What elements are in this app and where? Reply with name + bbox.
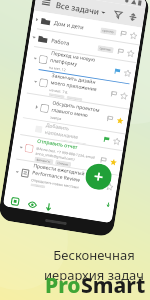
staticText: Переход на новую платформу	[50, 50, 115, 74]
button[interactable]: Отметить выполненной	[39, 78, 48, 88]
button[interactable]: Избранное	[112, 136, 121, 146]
staticText: Определить новых местами	[31, 177, 79, 190]
staticText: Дом и дети	[54, 19, 85, 31]
staticText: Отправить отчет	[37, 138, 78, 151]
button[interactable]: Избранное	[105, 182, 114, 191]
button[interactable]: Флажок	[105, 114, 114, 123]
button[interactable]: Избранное	[108, 157, 118, 166]
staticText: Бесконечная	[53, 246, 135, 264]
button[interactable]: Флажок	[119, 29, 128, 38]
staticText: завтра	[50, 114, 62, 121]
button[interactable]: Развернуть	[125, 9, 140, 24]
staticText: Обсудить проектом главного меню	[51, 100, 107, 122]
button[interactable]: Отметить выполненной	[17, 92, 129, 133]
staticText: на мет. 12	[49, 65, 66, 72]
button[interactable]: Избранное	[128, 31, 138, 40]
staticText: работа	[32, 184, 43, 187]
staticText: на мет. 3	[44, 137, 59, 140]
staticText: срочно	[57, 161, 69, 166]
staticText: срочно	[102, 28, 115, 34]
button[interactable]: Добавить задачу	[84, 162, 113, 191]
button[interactable]: Меню	[39, 0, 53, 9]
button[interactable]: Работа	[28, 28, 140, 62]
button[interactable]: Фильтр	[110, 7, 125, 22]
button[interactable]: Избранное	[115, 116, 124, 125]
button[interactable]: Добавить напоминание	[14, 117, 125, 150]
staticText: Работа	[51, 37, 71, 47]
button[interactable]: Отметить выполненной	[39, 55, 48, 64]
button[interactable]: Отметить выполненной	[25, 46, 137, 84]
button[interactable]: Флажок	[95, 180, 104, 189]
staticText: иерархия задач	[44, 266, 144, 284]
staticText: @Anna (тел. +7 999-888-1234, email anna_…	[35, 146, 96, 165]
button[interactable]: Избранное	[126, 49, 135, 58]
staticText: срочно	[99, 46, 112, 52]
staticText: дизайн	[51, 94, 63, 97]
button[interactable]: Показать	[26, 198, 38, 210]
staticText: на мет. 7 б.	[49, 87, 69, 95]
button[interactable]: Новая задача	[9, 195, 21, 208]
button[interactable]: Отметить выполненной	[24, 144, 34, 153]
button[interactable]: Все задачи	[55, 0, 106, 18]
button[interactable]: Отметить выполненной	[21, 68, 133, 109]
staticText: срочно	[68, 97, 80, 100]
staticText: Провести ежегодный Performance Review	[32, 162, 97, 186]
staticText: Smart	[81, 271, 146, 300]
button[interactable]: Флажок	[102, 135, 111, 144]
button[interactable]: Отметить выполненной	[10, 134, 123, 175]
staticText: финансы	[36, 158, 52, 163]
button[interactable]: Провести ежегодный Performance Review	[6, 159, 119, 200]
button[interactable]: Флажок	[113, 67, 122, 76]
button[interactable]: Дом и дети	[31, 10, 142, 44]
button[interactable]: Флажок	[99, 156, 108, 165]
button[interactable]: Флажок	[116, 47, 125, 56]
button[interactable]: Флажок	[109, 89, 118, 99]
staticText: Закончить дизайн моего приложения	[50, 72, 112, 95]
button[interactable]: Избранное	[123, 68, 132, 77]
button[interactable]: Избранное	[119, 91, 128, 100]
button[interactable]: Свернуть все	[42, 200, 55, 213]
staticText: Добавить напоминание	[44, 122, 104, 145]
staticText: Pro	[45, 271, 81, 300]
button[interactable]: Отметить выполненной	[40, 104, 49, 113]
staticText: Все задачи	[55, 0, 100, 17]
